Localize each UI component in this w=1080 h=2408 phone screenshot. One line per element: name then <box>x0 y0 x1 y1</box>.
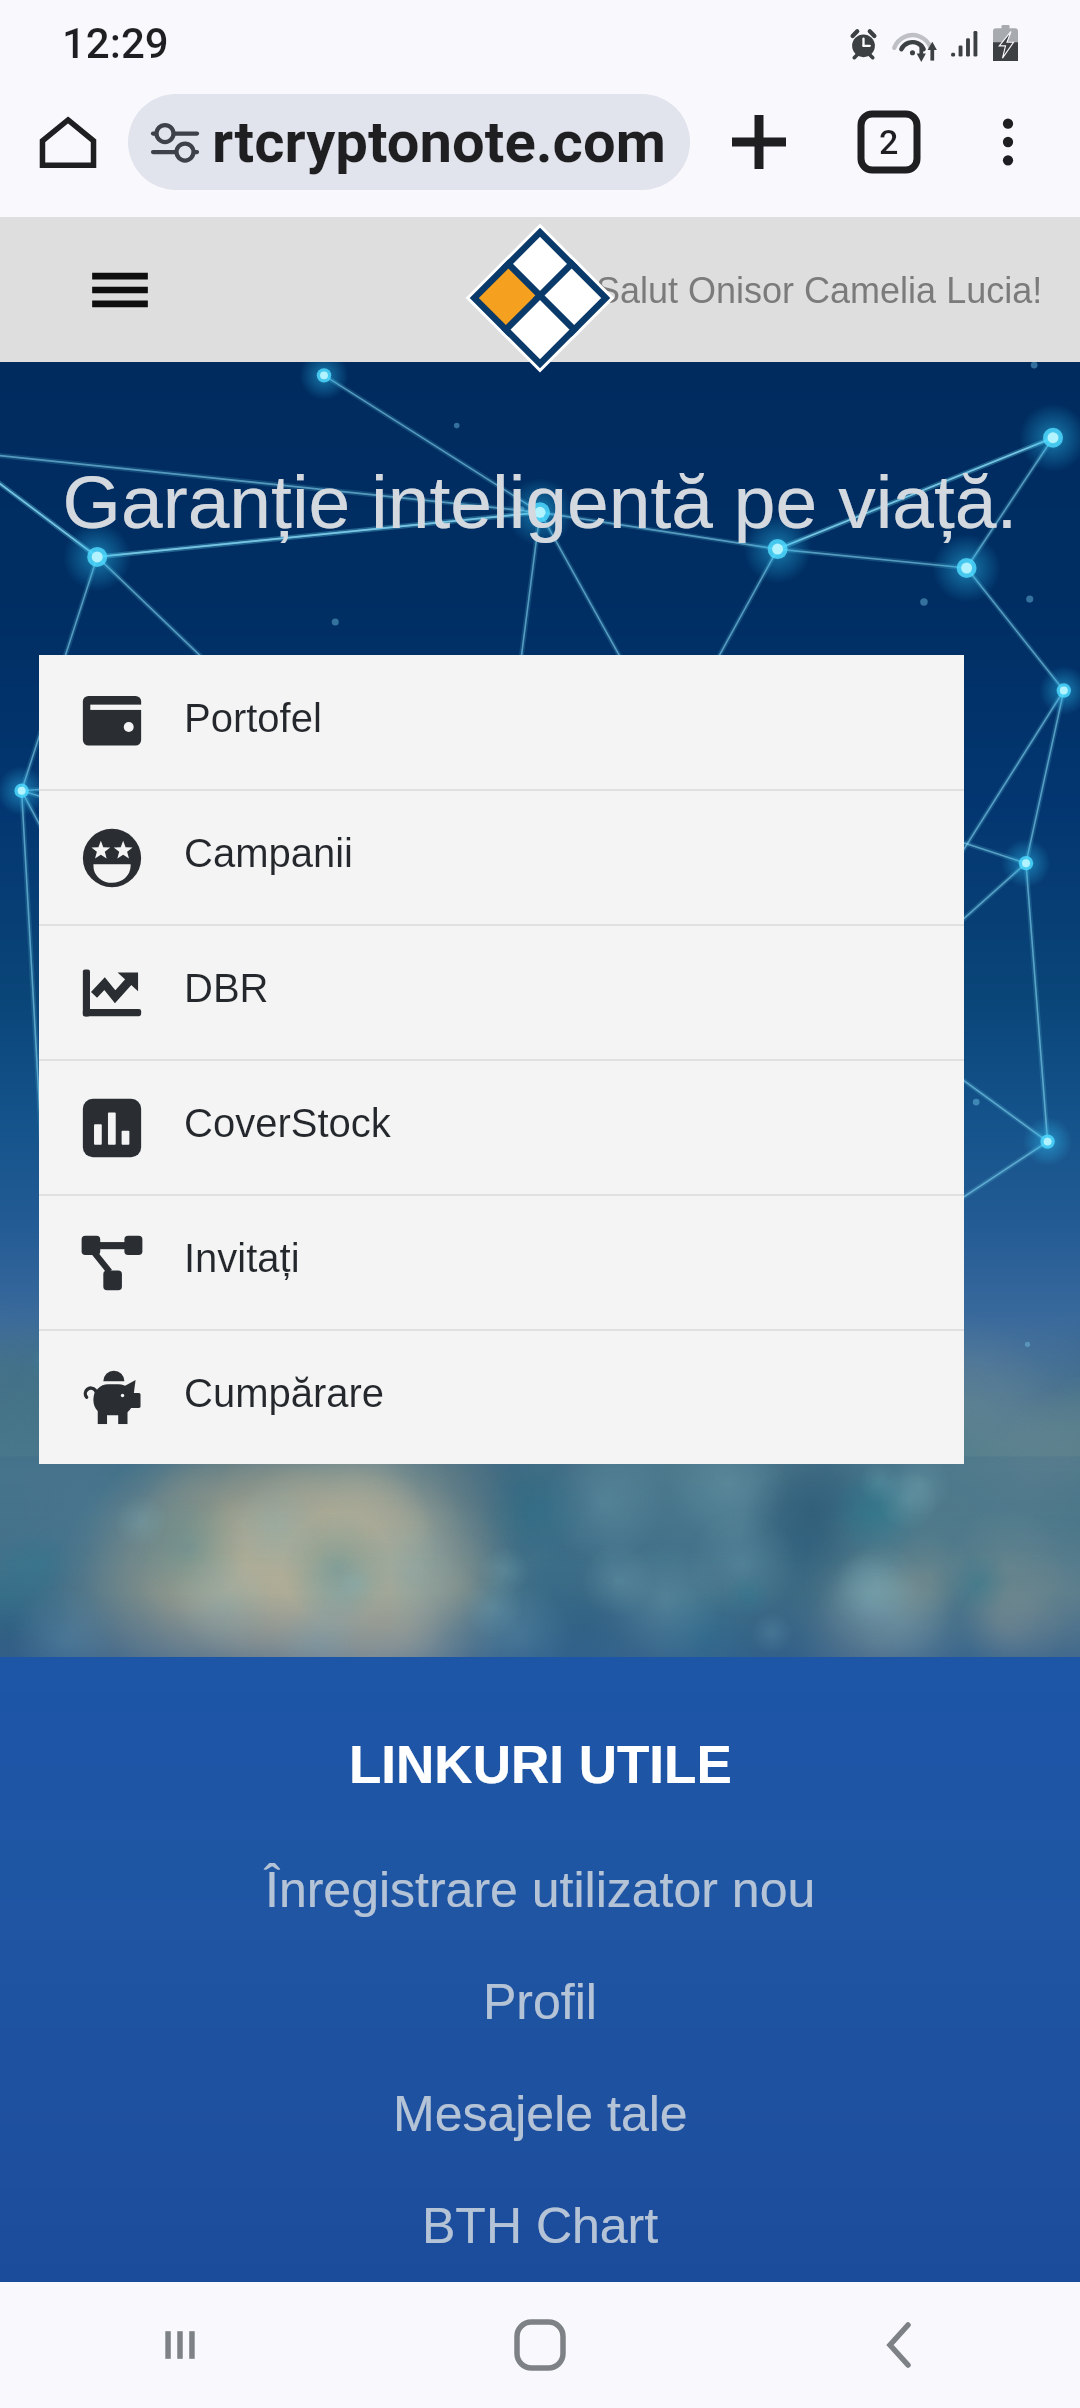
button[interactable]: Portofel <box>39 655 964 789</box>
button[interactable]: Profil <box>0 1946 1080 2058</box>
button[interactable]: Înregistrare utilizator nou <box>0 1834 1080 1946</box>
staticText: CoverStock <box>184 1101 391 1146</box>
button[interactable]: BTH Chart <box>0 2170 1080 2282</box>
button[interactable]: Tabs <box>844 97 934 187</box>
staticText: DBR <box>184 966 269 1011</box>
staticText: Mesajele tale <box>393 2086 688 2142</box>
staticText: Campanii <box>184 831 353 876</box>
staticText: Salut Onisor Camelia Lucia! <box>596 270 1043 310</box>
button[interactable]: More options <box>966 100 1050 184</box>
button[interactable]: Campanii <box>39 791 964 924</box>
button[interactable]: Home <box>360 2282 720 2408</box>
staticText: 12:29 <box>62 19 169 68</box>
button[interactable]: DBR <box>39 926 964 1059</box>
button[interactable]: Recents <box>0 2282 360 2408</box>
button[interactable]: rtcryptonote.com <box>128 94 690 190</box>
button[interactable]: Cumpărare <box>39 1331 964 1464</box>
staticText: Înregistrare utilizator nou <box>265 1862 816 1918</box>
staticText: Invitați <box>184 1236 300 1281</box>
button[interactable]: Home <box>26 100 110 184</box>
staticText: Portofel <box>184 696 322 741</box>
button[interactable]: CoverStock <box>39 1061 964 1194</box>
staticText: Profil <box>483 1974 597 2030</box>
button[interactable]: New tab <box>714 97 804 187</box>
staticText: Garanție inteligentă pe viață. <box>0 460 1080 544</box>
button[interactable]: Mesajele tale <box>0 2058 1080 2170</box>
staticText: LINKURI UTILE <box>349 1735 732 1794</box>
staticText: 2 <box>879 122 899 162</box>
button[interactable]: Back <box>720 2282 1080 2408</box>
staticText: Cumpărare <box>184 1371 385 1416</box>
button[interactable]: Invitați <box>39 1196 964 1329</box>
staticText: BTH Chart <box>422 2198 659 2254</box>
staticText: rtcryptonote.com <box>212 108 666 176</box>
button[interactable]: Menu <box>82 252 158 328</box>
